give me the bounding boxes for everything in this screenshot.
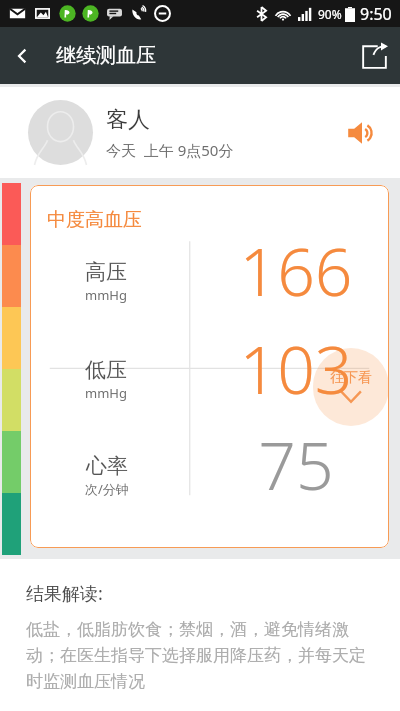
staticText: 103 — [239, 323, 353, 413]
staticText: 往下看 — [330, 369, 372, 387]
button[interactable]: 返回 — [0, 33, 46, 79]
button[interactable]: 分享 — [348, 30, 400, 82]
staticText: 166 — [239, 225, 353, 315]
staticText: 低压 — [85, 357, 127, 383]
staticText: 9:50 — [360, 3, 392, 25]
staticText: 今天 上午 9点50分 — [106, 140, 234, 160]
staticText: 中度高血压 — [47, 208, 142, 232]
staticText: 结果解读: — [26, 581, 103, 606]
staticText: 90% — [318, 6, 342, 22]
staticText: 客人 — [106, 106, 150, 134]
staticText: 高压 — [85, 259, 127, 285]
button[interactable]: 往下看 — [313, 348, 389, 426]
staticText: 继续测血压 — [56, 43, 156, 68]
staticText: mmHg — [85, 384, 127, 402]
staticText: mmHg — [85, 286, 127, 304]
button[interactable]: 客人 — [0, 87, 400, 178]
staticText: 低盐，低脂肪饮食；禁烟，酒，避免情绪激动；在医生指导下选择服用降压药，并每天定时… — [26, 619, 380, 692]
staticText: 次/分钟 — [85, 480, 129, 498]
staticText: 75 — [258, 419, 334, 509]
button[interactable]: 语音播报 — [340, 111, 384, 155]
staticText: 心率 — [86, 453, 128, 479]
